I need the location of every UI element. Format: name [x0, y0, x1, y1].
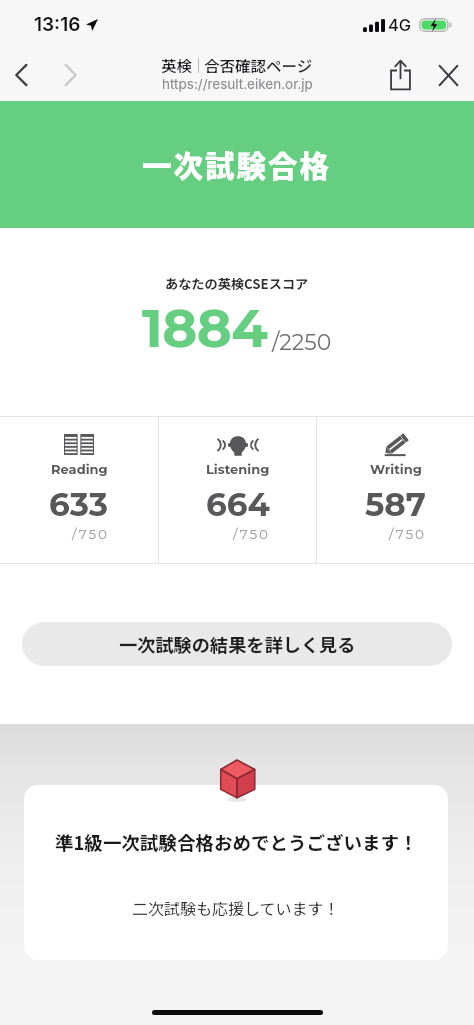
button[interactable]: 一次試験の結果を詳しく見る	[22, 622, 452, 666]
staticText: 準1級一次試験合格おめでとうございます！	[55, 829, 418, 856]
staticText: 587	[365, 485, 426, 525]
staticText: Listening	[206, 461, 270, 477]
staticText: 1884	[142, 296, 268, 361]
staticText: /750	[72, 526, 109, 542]
button[interactable]: Share	[376, 51, 424, 99]
staticText: 633	[49, 485, 109, 525]
staticText: /750	[389, 526, 426, 542]
staticText: 664	[206, 485, 270, 525]
staticText: 4G	[388, 15, 412, 35]
staticText: /2250	[272, 329, 332, 356]
button[interactable]: Forward	[46, 51, 94, 99]
button[interactable]: Writing	[317, 417, 474, 563]
staticText: Writing	[370, 461, 422, 477]
staticText: あなたの英検CSEスコア	[165, 274, 309, 293]
button[interactable]: Reading	[0, 417, 158, 563]
staticText: 13:16	[34, 13, 81, 36]
staticText: 二次試験も応援しています！	[132, 896, 340, 919]
button[interactable]: Close	[424, 51, 472, 99]
staticText: 一次試験合格	[142, 143, 332, 186]
staticText: 合否確認ページ	[204, 54, 313, 76]
button[interactable]: Back	[0, 51, 46, 99]
staticText: /750	[233, 526, 270, 542]
staticText: Reading	[51, 461, 108, 477]
staticText: https://result.eiken.or.jp	[162, 76, 313, 92]
staticText: 英検	[161, 54, 193, 76]
staticText: 一次試験の結果を詳しく見る	[119, 631, 356, 657]
button[interactable]: Listening	[159, 417, 316, 563]
